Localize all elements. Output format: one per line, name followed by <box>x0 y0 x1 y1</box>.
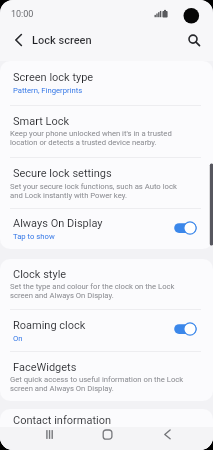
staticText: Smart Lock <box>13 115 70 128</box>
button[interactable] <box>173 220 199 236</box>
staticText: Tap to show <box>13 232 55 241</box>
staticText: Set your secure lock functions, such as … <box>10 182 177 200</box>
staticText: Roaming clock <box>13 319 86 332</box>
button[interactable] <box>185 31 203 49</box>
button[interactable] <box>39 427 60 448</box>
staticText: Secure lock settings <box>13 167 112 180</box>
staticText: Keep your phone unlocked when it's in a … <box>10 129 172 147</box>
staticText: Clock style <box>13 268 67 281</box>
staticText: Set the type and colour for the clock on… <box>10 282 175 300</box>
button[interactable] <box>173 321 199 337</box>
button[interactable] <box>0 105 213 158</box>
button[interactable] <box>0 309 213 352</box>
button[interactable] <box>0 259 213 309</box>
button[interactable] <box>9 32 27 49</box>
button[interactable] <box>0 409 213 427</box>
staticText: Pattern, Fingerprints <box>13 86 83 95</box>
button[interactable] <box>97 427 118 448</box>
button[interactable] <box>0 208 213 249</box>
staticText: 10:00 <box>11 9 34 20</box>
staticText: Get quick access to useful information o… <box>10 375 184 393</box>
staticText: FaceWidgets <box>13 361 77 374</box>
button[interactable] <box>0 61 213 105</box>
staticText: Always On Display <box>13 217 103 230</box>
button[interactable] <box>157 427 178 448</box>
staticText: Contact information <box>13 414 112 427</box>
staticText: On <box>13 334 23 343</box>
button[interactable] <box>0 351 213 400</box>
staticText: Screen lock type <box>13 71 94 84</box>
button[interactable] <box>0 157 213 207</box>
staticText: Lock screen <box>32 34 92 47</box>
